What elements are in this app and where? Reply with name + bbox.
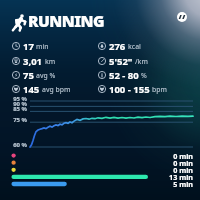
staticText: avg % bbox=[36, 71, 56, 80]
staticText: kcal bbox=[128, 42, 141, 51]
staticText: 100 - 155 bbox=[109, 83, 150, 95]
staticText: 5'52" bbox=[109, 55, 133, 67]
staticText: 13 min bbox=[0, 172, 193, 181]
button[interactable]: 17 bbox=[12, 40, 49, 52]
staticText: 5 min bbox=[0, 179, 193, 188]
staticText: 276 bbox=[109, 40, 126, 52]
button[interactable]: 52 - 80 bbox=[98, 69, 147, 81]
button[interactable]: 0 min bbox=[0, 151, 200, 160]
button[interactable]: 13 min bbox=[0, 172, 200, 181]
staticText: 145 bbox=[23, 83, 40, 95]
staticText: 75 % bbox=[0, 116, 27, 124]
staticText: % bbox=[141, 71, 147, 80]
button[interactable]: 75 bbox=[12, 69, 56, 81]
staticText: bpm bbox=[152, 85, 167, 94]
staticText: 17 bbox=[23, 40, 34, 52]
button[interactable]: 0 min bbox=[0, 165, 200, 174]
button[interactable]: 0 min bbox=[0, 158, 200, 167]
button[interactable]: 3,01 bbox=[12, 55, 56, 67]
staticText: 0 min bbox=[0, 165, 193, 174]
staticText: 52 - 80 bbox=[109, 69, 139, 81]
button[interactable]: 100 - 155 bbox=[98, 83, 167, 95]
staticText: 85 % bbox=[0, 105, 27, 113]
staticText: 0 min bbox=[0, 151, 193, 160]
staticText: 0 min bbox=[0, 158, 193, 167]
staticText: /km bbox=[135, 57, 148, 66]
button[interactable]: 5'52" bbox=[98, 55, 148, 67]
staticText: avg bpm bbox=[42, 85, 71, 94]
staticText: min bbox=[36, 42, 49, 51]
button[interactable]: 276 bbox=[98, 40, 141, 52]
staticText: 90 % bbox=[0, 100, 27, 108]
button[interactable]: 5 min bbox=[0, 179, 200, 188]
staticText: 95 % bbox=[0, 95, 27, 103]
staticText: 60 % bbox=[0, 141, 27, 149]
staticText: 75 bbox=[23, 69, 34, 81]
staticText: RUNNING bbox=[28, 10, 104, 31]
button[interactable]: 145 bbox=[12, 83, 71, 95]
staticText: 3,01 bbox=[23, 55, 43, 67]
staticText: km bbox=[45, 57, 56, 66]
button[interactable]: Pause bbox=[177, 12, 187, 22]
